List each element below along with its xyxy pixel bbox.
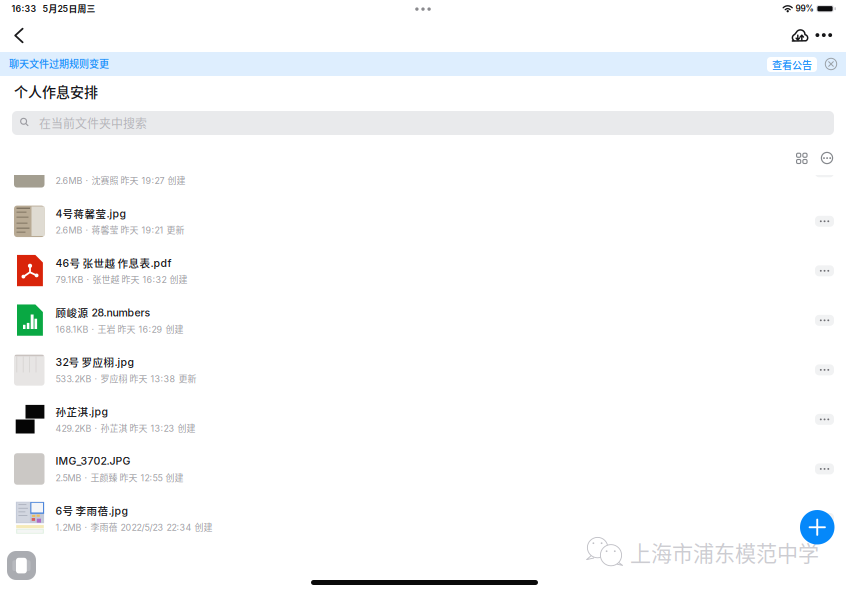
staticText: 查看公告 bbox=[772, 57, 812, 72]
staticText: 2.6MB · 蒋馨莹 昨天 19:21 更新 bbox=[55, 223, 184, 236]
staticText: 168.1KB · 王岩 昨天 16:29 创建 bbox=[55, 322, 183, 335]
staticText: 2.5MB · 王颜臻 昨天 12:55 创建 bbox=[55, 471, 183, 484]
button[interactable]: Dismiss notice bbox=[0, 0, 18, 18]
staticText: 个人作息安排 bbox=[14, 81, 98, 101]
button[interactable]: 4号蒋馨莹.jpg bbox=[0, 193, 846, 237]
button[interactable]: Sort and filter bbox=[0, 0, 22, 22]
staticText: 16:33 5月25日周三 bbox=[11, 2, 95, 15]
button[interactable]: More actions bbox=[0, 292, 29, 310]
staticText: 79.1KB · 张世越 昨天 16:32 创建 bbox=[55, 273, 187, 286]
staticText: 2.6MB · 沈赛照 昨天 19:27 创建 bbox=[55, 174, 185, 187]
button[interactable]: 3号 沈赛照.jpg bbox=[0, 144, 846, 188]
button[interactable]: More actions bbox=[0, 342, 29, 360]
button[interactable]: Transfers bbox=[0, 0, 23, 22]
button[interactable]: More actions bbox=[0, 490, 29, 508]
staticText: 上海市浦东模范中学 bbox=[630, 537, 819, 567]
staticText: IMG_3702.JPG bbox=[55, 455, 130, 467]
staticText: 533.2KB · 罗应栩 昨天 13:38 更新 bbox=[55, 372, 196, 385]
button[interactable]: AssistiveTouch bbox=[0, 0, 29, 29]
button[interactable]: 查看公告 bbox=[0, 0, 50, 15]
staticText: 6号 李雨蓓.jpg bbox=[55, 503, 128, 518]
staticText: 顾峻源 28.numbers bbox=[55, 305, 150, 320]
button[interactable]: Grid view bbox=[0, 0, 22, 22]
button[interactable]: 顾峻源 28.numbers bbox=[0, 292, 846, 336]
staticText: 46号 张世越 作息表.pdf bbox=[55, 255, 171, 270]
button[interactable]: More actions bbox=[0, 391, 29, 409]
staticText: 4号蒋馨莹.jpg bbox=[55, 206, 126, 221]
button[interactable]: 聊天文件过期规则变更 bbox=[0, 0, 240, 24]
button[interactable]: 在当前文件夹中搜索 bbox=[0, 0, 822, 24]
staticText: 孙芷淇.jpg bbox=[55, 404, 108, 419]
button[interactable]: More actions bbox=[0, 441, 29, 459]
button[interactable]: 46号 张世越 作息表.pdf bbox=[0, 243, 846, 287]
staticText: 429.2KB · 孙芷淇 昨天 13:23 创建 bbox=[55, 421, 195, 434]
staticText: 1.2MB · 李雨蓓 2022/5/23 22:34 创建 bbox=[55, 520, 212, 533]
button[interactable]: 孙芷淇.jpg bbox=[0, 391, 846, 435]
staticText: 聊天文件过期规则变更 bbox=[9, 56, 109, 71]
staticText: 32号 罗应栩.jpg bbox=[55, 354, 134, 370]
staticText: 99% bbox=[795, 3, 813, 13]
button[interactable]: More options bbox=[0, 0, 23, 22]
button[interactable]: 6号 李雨蓓.jpg bbox=[0, 490, 846, 534]
button[interactable]: 32号 罗应栩.jpg bbox=[0, 342, 846, 386]
button[interactable]: IMG_3702.JPG bbox=[0, 441, 846, 485]
button[interactable]: Back bbox=[0, 0, 26, 26]
button[interactable]: More actions bbox=[0, 193, 29, 211]
button[interactable]: More actions bbox=[0, 243, 29, 261]
button[interactable]: Add file bbox=[0, 0, 34, 34]
staticText: 在当前文件夹中搜索 bbox=[39, 114, 147, 132]
